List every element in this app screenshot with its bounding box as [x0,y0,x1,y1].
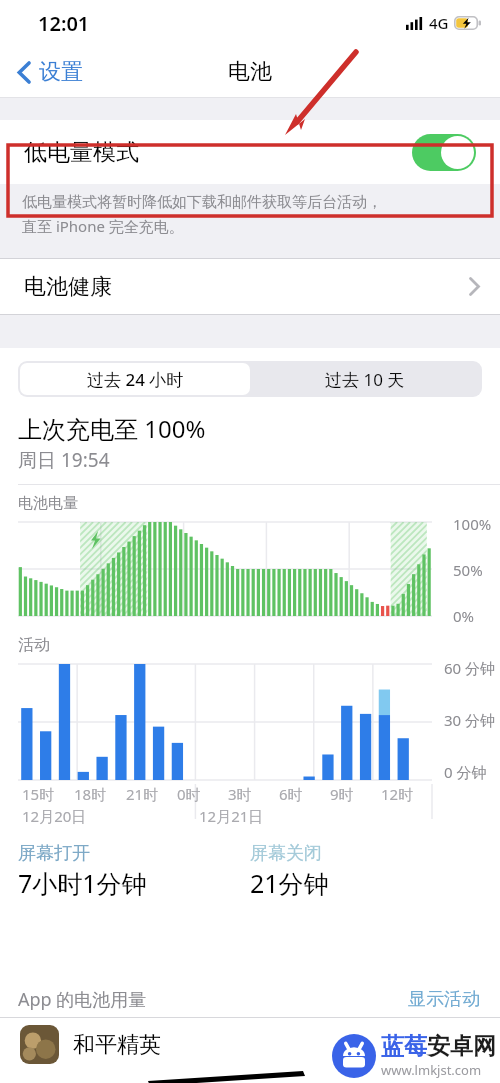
staticText: 活动 [18,635,50,655]
staticText: 电池健康 [24,273,112,301]
staticText: 0 分钟 [444,762,487,782]
button[interactable]: 低电量模式 [0,120,500,184]
staticText: 和平精英 [73,1031,161,1059]
staticText: 4G [429,13,449,33]
staticText: 18时 [74,784,107,804]
staticText: 21分钟 [250,866,329,900]
staticText: 上次充电至 100% [18,412,206,445]
staticText: 12时 [381,784,414,804]
staticText: 过去 24 小时 [87,368,184,391]
staticText: 15时 [22,784,55,804]
button[interactable]: 电池健康 [0,259,500,314]
staticText: www.lmkjst.com [381,1061,482,1079]
staticText: 0% [453,606,475,626]
staticText: 安卓网 [427,1032,496,1061]
staticText: 12月20日 [22,806,87,826]
staticText: 12:01 [38,10,90,37]
staticText: App 的电池用量 [18,987,147,1012]
staticText: 60 分钟 [444,658,496,678]
staticText: 周日 19:54 [18,447,110,473]
staticText: 屏幕打开 [18,842,90,865]
staticText: 低电量模式 [24,138,139,167]
staticText: 7小时1分钟 [18,866,147,900]
button[interactable]: 显示活动 [406,986,482,1013]
staticText: 12月21日 [199,806,264,826]
staticText: 30 分钟 [444,710,496,730]
staticText: 电池电量 [18,494,78,513]
staticText: 3时 [228,784,252,804]
staticText: 屏幕关闭 [250,842,322,865]
staticText: 50% [453,560,483,580]
staticText: 100% [453,514,492,534]
button[interactable]: 和平精英 [0,1018,500,1071]
staticText: 6时 [279,784,303,804]
staticText: 电池 [228,58,272,86]
staticText: 直至 iPhone 完全充电。 [22,216,184,236]
staticText: 9时 [330,784,354,804]
staticText: 0时 [177,784,201,804]
button[interactable]: Low Power Mode toggle [412,134,476,171]
staticText: 过去 10 天 [325,368,405,391]
button[interactable]: 过去 10 天 [250,363,480,395]
staticText: 显示活动 [408,988,480,1011]
button[interactable]: 过去 24 小时 [20,363,250,395]
staticText: 低电量模式将暂时降低如下载和邮件获取等后台活动， [22,193,382,212]
staticText: 蓝莓 [381,1032,427,1061]
staticText: 设置 [39,58,83,86]
button[interactable]: 设置 [12,53,89,91]
staticText: 21时 [126,784,159,804]
